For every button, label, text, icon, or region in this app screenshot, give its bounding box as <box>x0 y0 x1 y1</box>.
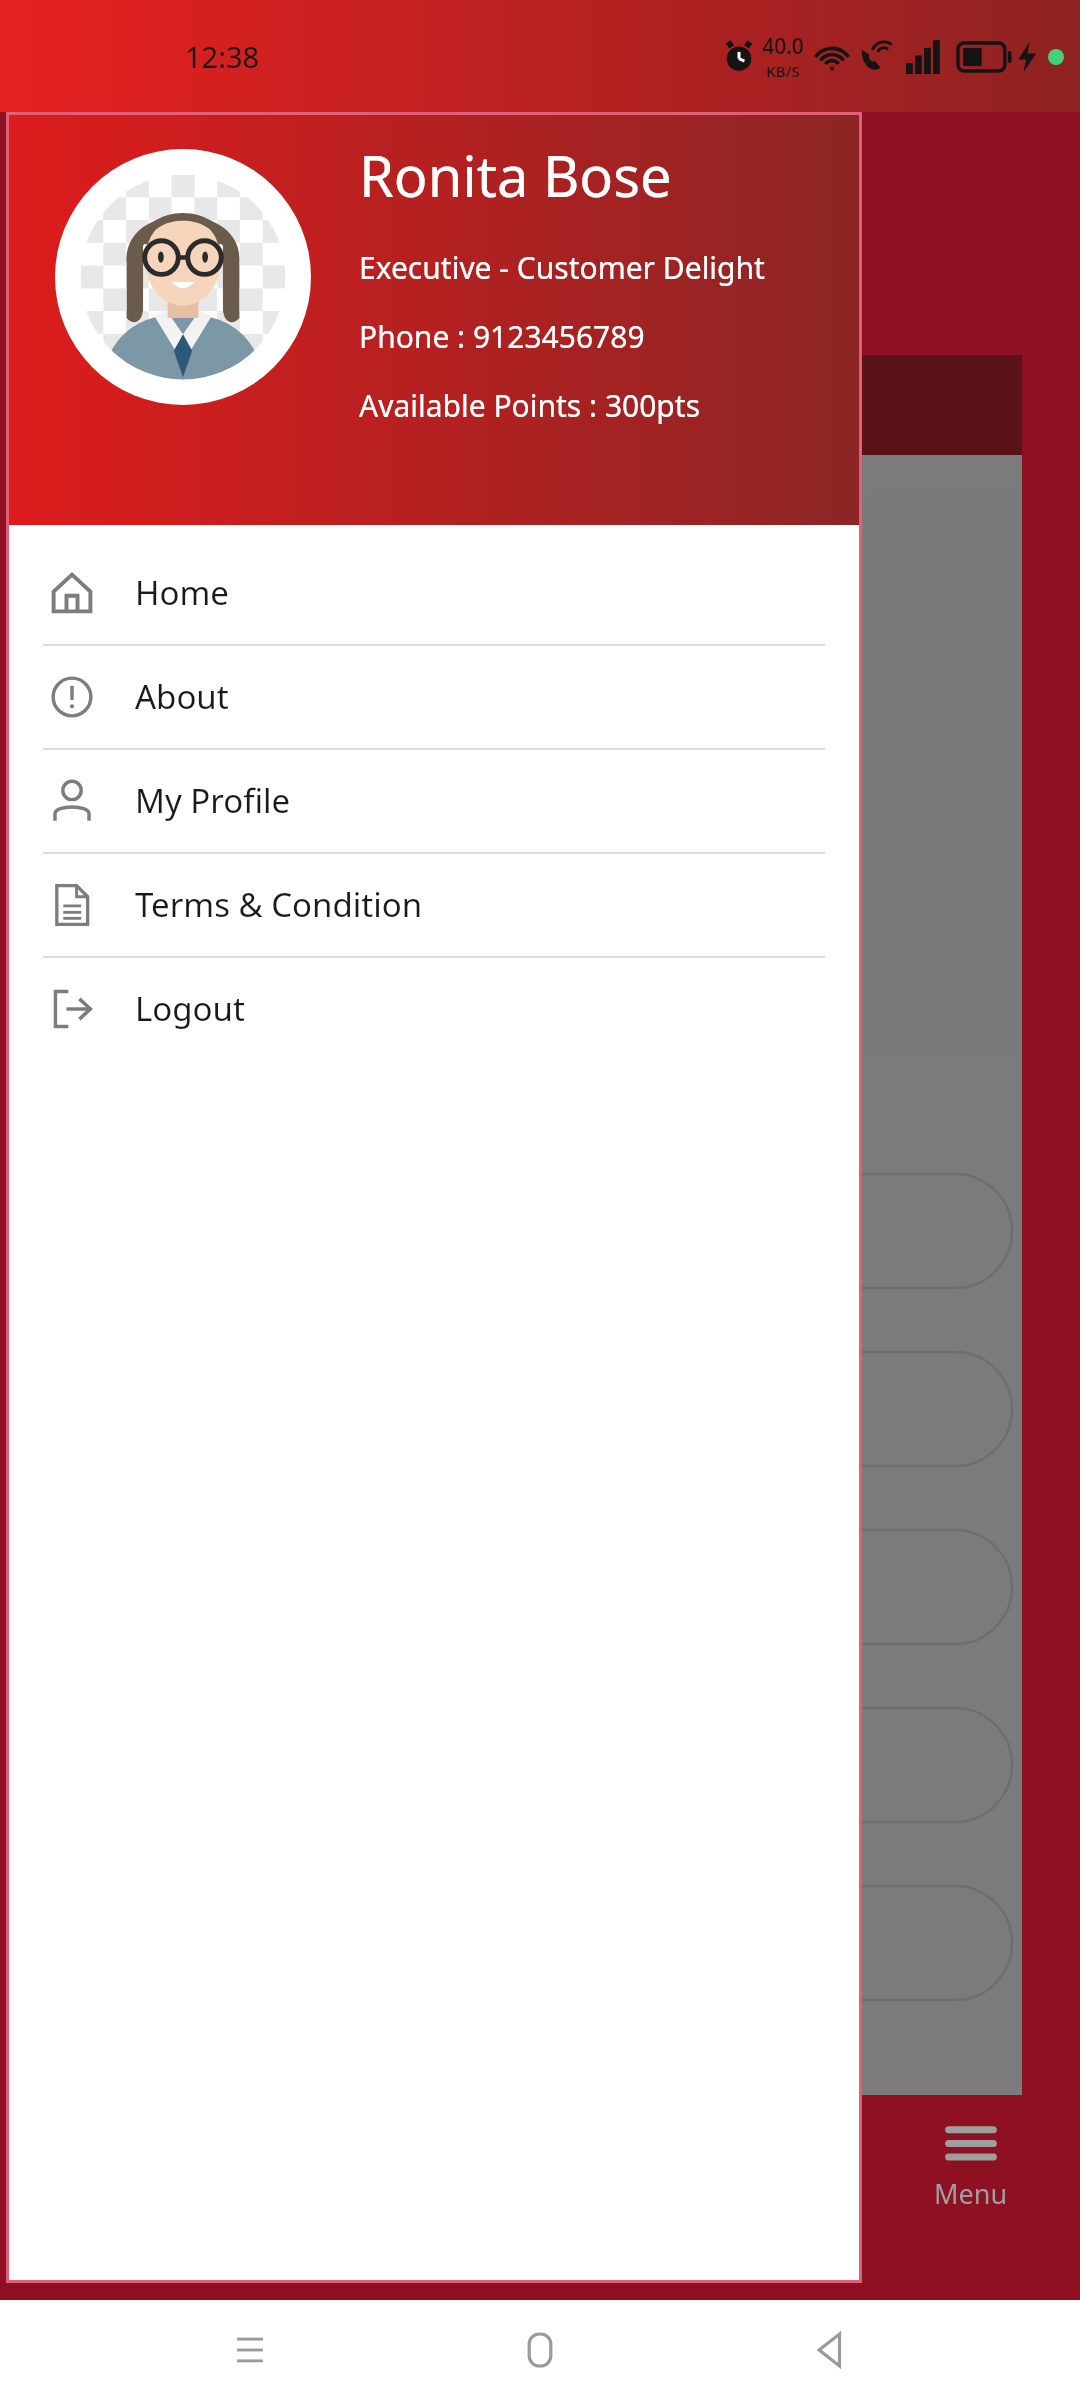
button[interactable]: Logout <box>9 971 859 1046</box>
button[interactable]: Back <box>790 2310 870 2390</box>
staticText: Menu <box>934 2175 1008 2212</box>
staticText: About <box>135 674 229 719</box>
staticText: Logout <box>135 986 245 1031</box>
button[interactable]: Home <box>500 2310 580 2390</box>
staticText: My Profile <box>135 778 291 823</box>
staticText: Available Points : 300pts <box>359 385 701 426</box>
staticText: Executive - Customer Delight <box>359 247 765 288</box>
staticText: Ronita Bose <box>359 137 672 213</box>
staticText: 40.0 <box>762 32 804 61</box>
button[interactable]: My Profile <box>9 763 859 838</box>
button[interactable]: About <box>9 659 859 734</box>
staticText: Home <box>135 570 229 615</box>
staticText: Phone : 9123456789 <box>359 316 645 357</box>
button[interactable]: Menu <box>862 2095 1080 2300</box>
button[interactable]: Terms & Condition <box>9 867 859 942</box>
staticText: 12:38 <box>185 37 260 76</box>
button[interactable]: Home <box>9 555 859 630</box>
button[interactable]: Recents <box>210 2310 290 2390</box>
staticText: Terms & Condition <box>135 882 423 927</box>
staticText: KB/S <box>766 61 800 81</box>
